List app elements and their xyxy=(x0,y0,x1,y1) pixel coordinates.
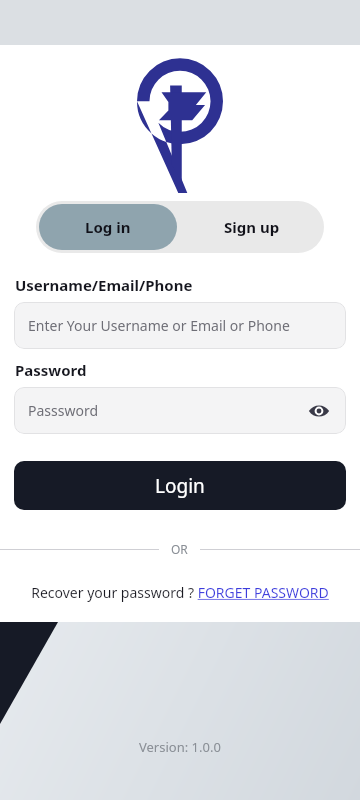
staticText: Username/Email/Phone xyxy=(15,275,193,295)
button[interactable]: Log in xyxy=(39,204,177,250)
staticText: Passsword xyxy=(28,401,306,420)
staticText: Enter Your Username or Email or Phone xyxy=(28,316,332,335)
staticText: Login xyxy=(155,473,205,499)
button[interactable]: Passsword xyxy=(14,387,346,434)
staticText: Version: 1.0.0 xyxy=(139,738,221,756)
button[interactable]: Login xyxy=(14,461,346,510)
staticText: OR xyxy=(171,541,188,557)
button[interactable]: Show password xyxy=(306,398,332,424)
staticText: Log in xyxy=(85,217,131,237)
button[interactable]: Sign up xyxy=(180,201,324,253)
staticText: Sign up xyxy=(224,217,280,237)
staticText: Recover your password ? FORGET PASSWORD xyxy=(31,583,329,602)
staticText: Password xyxy=(15,360,87,380)
button[interactable]: Recover your password ? FORGET PASSWORD xyxy=(31,583,329,602)
button[interactable]: Enter Your Username or Email or Phone xyxy=(14,302,346,349)
